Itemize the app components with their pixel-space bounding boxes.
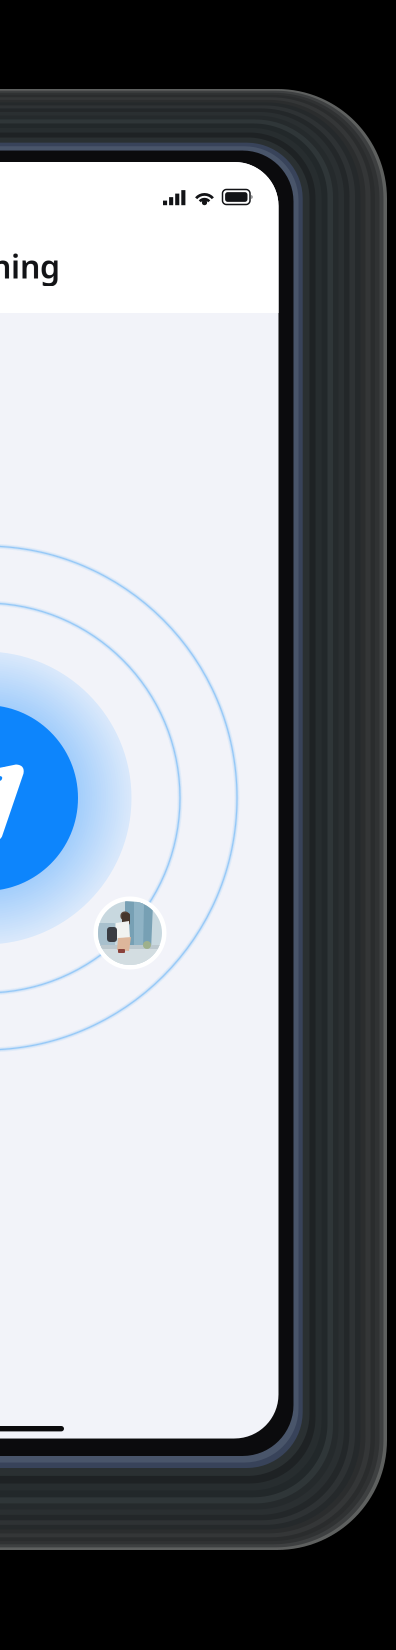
staticText: Searching (0, 245, 60, 287)
button[interactable]: Nearby person (93, 896, 166, 969)
